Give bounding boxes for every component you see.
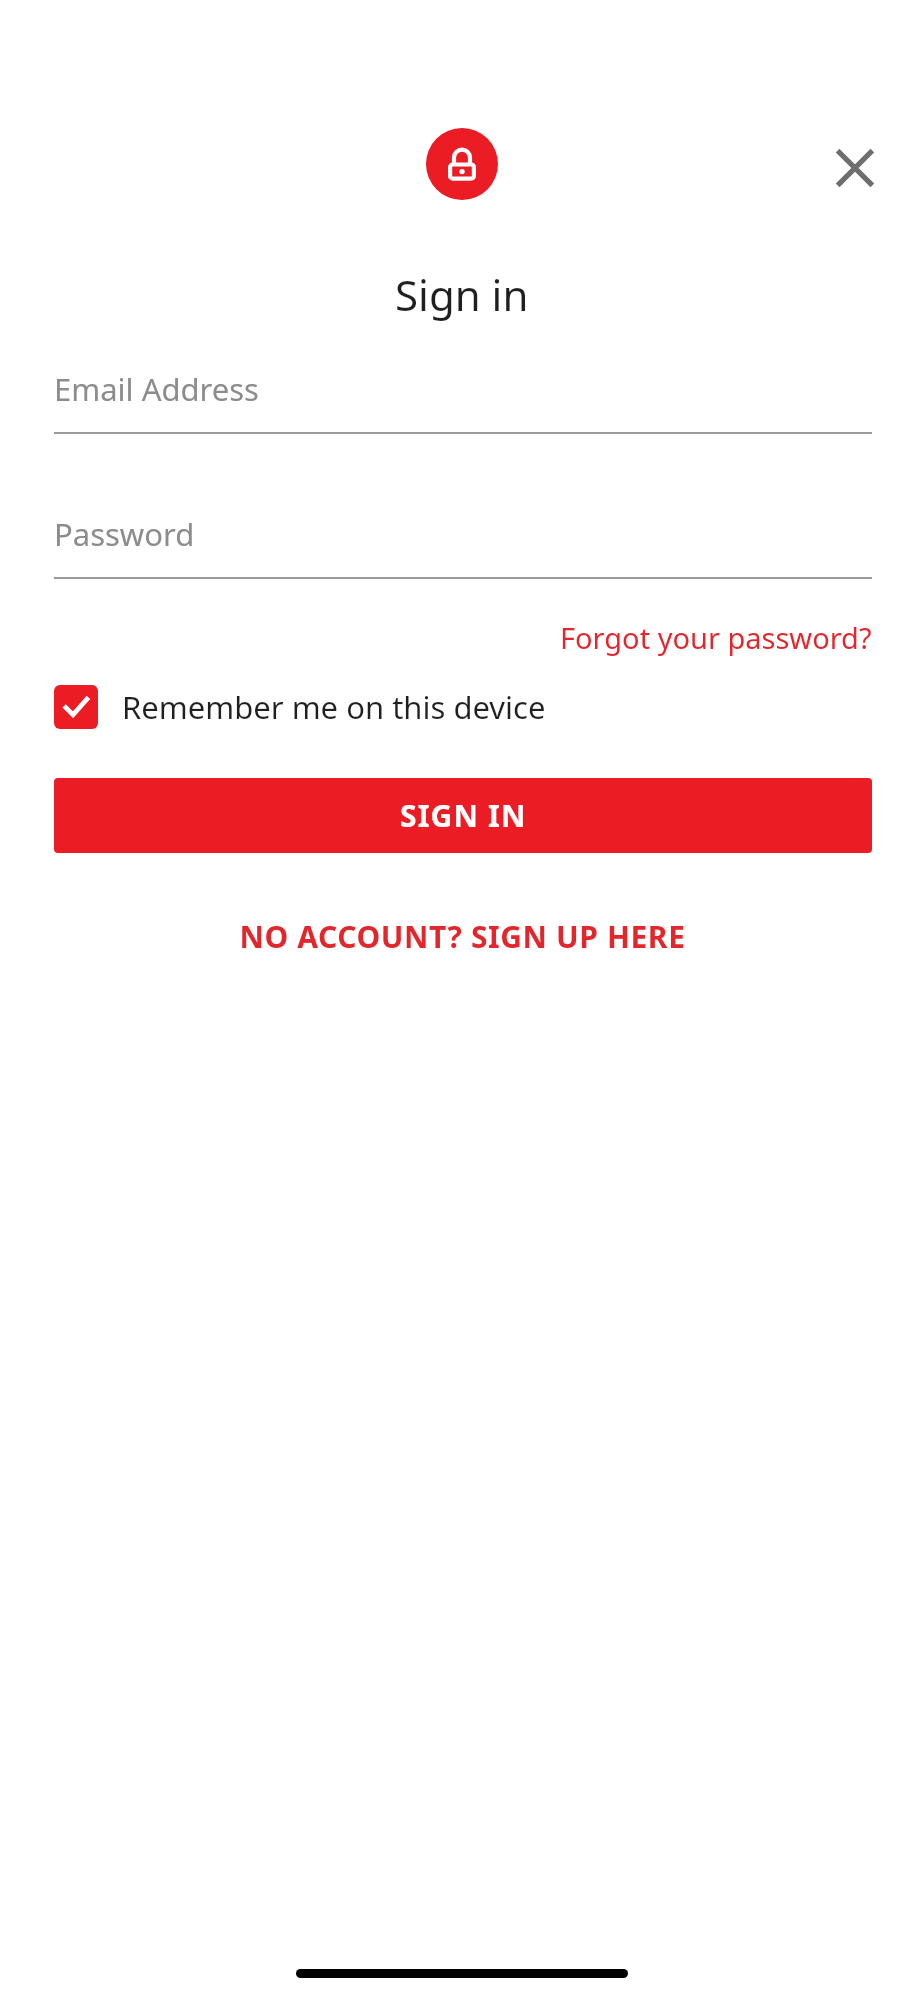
staticText: Email Address bbox=[54, 368, 259, 410]
staticText: Forgot your password? bbox=[560, 618, 872, 657]
button[interactable]: Email Address bbox=[54, 368, 872, 434]
button[interactable]: NO ACCOUNT? SIGN UP HERE bbox=[223, 908, 702, 965]
button[interactable]: Forgot your password? bbox=[560, 618, 872, 657]
staticText: SIGN IN bbox=[400, 795, 527, 836]
staticText: Password bbox=[54, 513, 195, 555]
staticText: Remember me on this device bbox=[122, 686, 546, 728]
staticText: Sign in bbox=[395, 266, 529, 323]
button[interactable]: SIGN IN bbox=[54, 778, 872, 853]
button[interactable]: Close bbox=[822, 135, 888, 201]
button[interactable]: Remember me on this device bbox=[54, 678, 546, 736]
button[interactable]: Password bbox=[54, 513, 872, 579]
staticText: NO ACCOUNT? SIGN UP HERE bbox=[239, 916, 686, 957]
